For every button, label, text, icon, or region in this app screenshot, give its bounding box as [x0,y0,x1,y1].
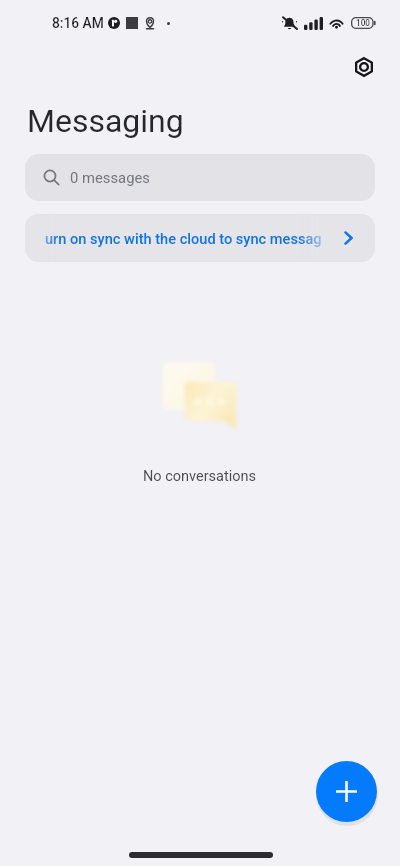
staticText: 8:16 AM [52,15,104,31]
staticText: 0 messages [70,169,150,186]
button[interactable]: New conversation [316,761,377,822]
staticText: urn on sync with the cloud to sync messa… [45,230,322,247]
button[interactable]: urn on sync with the cloud to sync messa… [25,214,375,262]
staticText: 100 [356,18,370,28]
button[interactable]: Settings [343,46,384,87]
button[interactable]: 0 messages [25,154,375,201]
staticText: No conversations [143,468,257,485]
staticText: Messaging [27,102,184,140]
